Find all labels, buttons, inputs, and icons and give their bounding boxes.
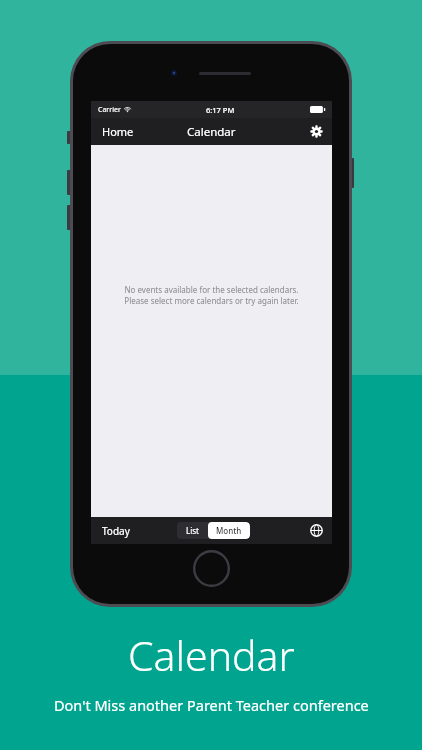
staticText: No events available for the selected cal… [124, 284, 299, 307]
staticText: Month [216, 525, 242, 536]
button[interactable]: Globe [301, 520, 332, 541]
staticText: List [186, 525, 199, 536]
staticText: 6:17 PM [206, 105, 235, 115]
button[interactable]: Home button [193, 550, 230, 587]
button[interactable]: Home [91, 119, 145, 144]
button[interactable]: Month [208, 522, 250, 539]
button[interactable]: List [177, 522, 208, 539]
staticText: Home [102, 124, 134, 139]
staticText: Today [102, 524, 130, 538]
staticText: Carrier [98, 105, 121, 115]
staticText: Don't Miss another Parent Teacher confer… [54, 695, 369, 715]
staticText: Calendar [128, 627, 295, 683]
staticText: Calendar [187, 124, 236, 140]
button[interactable]: Today [91, 519, 141, 543]
button[interactable]: Settings [301, 121, 332, 142]
